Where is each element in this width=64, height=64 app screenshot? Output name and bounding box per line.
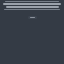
button[interactable] xyxy=(2,1,62,10)
button[interactable]: Action xyxy=(28,16,37,19)
